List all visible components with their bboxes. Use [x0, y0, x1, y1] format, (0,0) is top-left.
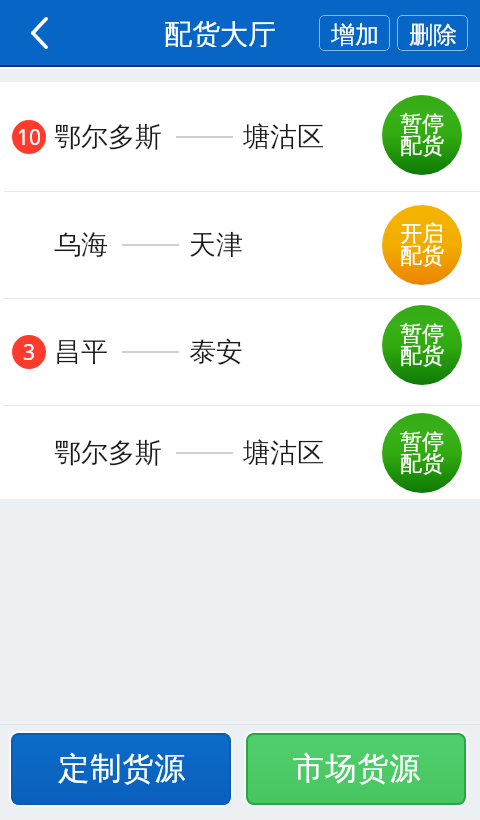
- staticText: 3: [23, 338, 36, 367]
- staticText: 天津: [189, 228, 243, 262]
- button[interactable]: 暂停 配货: [382, 413, 462, 493]
- button[interactable]: 开启 配货: [382, 205, 462, 285]
- button[interactable]: 3: [0, 299, 480, 405]
- button[interactable]: 暂停 配货: [382, 95, 462, 175]
- button[interactable]: 市场货源: [246, 733, 466, 805]
- staticText: 乌海: [54, 228, 108, 262]
- staticText: 删除: [409, 20, 457, 50]
- staticText: 暂停 配货: [400, 320, 444, 370]
- button[interactable]: 定制货源: [11, 733, 231, 805]
- staticText: 开启 配货: [400, 220, 444, 270]
- button[interactable]: 10: [0, 82, 480, 191]
- button[interactable]: 乌海: [0, 192, 480, 298]
- staticText: 塘沽区: [243, 120, 324, 154]
- staticText: 暂停 配货: [400, 428, 444, 478]
- staticText: 暂停 配货: [400, 110, 444, 160]
- staticText: 泰安: [189, 335, 243, 369]
- button[interactable]: 暂停 配货: [382, 305, 462, 385]
- button[interactable]: 鄂尔多斯: [0, 406, 480, 499]
- staticText: 鄂尔多斯: [54, 120, 162, 154]
- staticText: 配货大厅: [164, 17, 276, 47]
- staticText: 市场货源: [293, 749, 422, 788]
- staticText: 鄂尔多斯: [54, 436, 162, 470]
- button[interactable]: 删除: [397, 15, 468, 51]
- button[interactable]: 增加: [319, 15, 390, 51]
- staticText: 昌平: [54, 335, 108, 369]
- button[interactable]: Back: [14, 9, 64, 57]
- staticText: 10: [17, 123, 42, 152]
- staticText: 增加: [331, 20, 379, 50]
- staticText: 定制货源: [58, 749, 187, 788]
- staticText: 塘沽区: [243, 436, 324, 470]
